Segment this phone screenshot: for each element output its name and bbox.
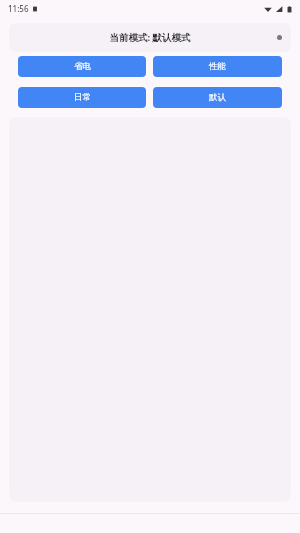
staticText: 性能 (209, 61, 226, 72)
staticText: 省电 (74, 61, 91, 72)
staticText: 11:56 (8, 3, 29, 14)
staticText: 默认 (209, 92, 226, 103)
button[interactable]: 日常 (18, 87, 146, 108)
button[interactable]: 省电 (18, 56, 146, 77)
button[interactable]: 性能 (153, 56, 282, 77)
button[interactable]: 当前模式: 默认模式 (9, 23, 291, 52)
staticText: 日常 (74, 92, 91, 103)
staticText: 当前模式: 默认模式 (109, 31, 191, 44)
button[interactable]: 默认 (153, 87, 282, 108)
